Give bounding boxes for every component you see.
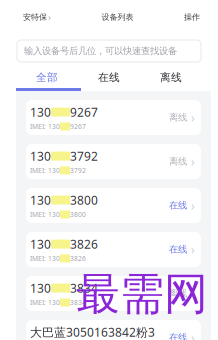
staticText: › — [191, 153, 195, 169]
button[interactable]: 130 — [26, 188, 201, 223]
staticText: 130 — [30, 192, 51, 208]
staticText: › — [191, 197, 195, 213]
staticText: 130 — [30, 236, 51, 252]
staticText: › — [191, 329, 195, 340]
staticText: 在线 — [169, 244, 187, 255]
staticText: 在线 — [98, 71, 120, 84]
staticText: 130 — [30, 148, 51, 164]
staticText: › — [191, 285, 195, 301]
button[interactable]: 离线 — [140, 67, 202, 88]
staticText: 在线 — [169, 332, 187, 340]
staticText: IMEI: 130 — [30, 122, 60, 131]
staticText: IMEI: 130 — [30, 254, 60, 263]
staticText: IMEI: 130 — [30, 210, 60, 219]
staticText: 全部 — [36, 71, 58, 84]
button[interactable]: 130 — [26, 144, 201, 179]
staticText: › — [191, 109, 195, 125]
staticText: IMEI: 130 — [30, 298, 60, 307]
button[interactable]: 全部 — [16, 67, 78, 88]
staticText: › — [48, 11, 51, 23]
button[interactable]: 输入设备号后几位，可以快速查找设备 — [0, 30, 218, 62]
staticText: 设备列表 — [101, 12, 133, 22]
staticText: 离线 — [160, 71, 182, 84]
button[interactable]: 在线 — [78, 67, 140, 88]
staticText: 操作 — [184, 12, 200, 22]
button[interactable]: 130 — [26, 100, 201, 135]
staticText: 130 — [30, 280, 51, 296]
staticText: 安特保 — [23, 12, 47, 22]
staticText: 3834 — [70, 298, 86, 307]
staticText: 3834 — [70, 280, 98, 296]
button[interactable]: 130 — [26, 232, 201, 267]
button[interactable]: 大巴蓝3050163842粉3 — [26, 320, 201, 340]
staticText: 3826 — [70, 254, 86, 263]
staticText: 3826 — [70, 236, 98, 252]
button[interactable]: 操作 — [184, 8, 218, 26]
staticText: 最需网 — [76, 267, 208, 321]
staticText: 3792 — [70, 148, 98, 164]
staticText: 离线 — [169, 112, 187, 123]
staticText: 9267 — [70, 122, 86, 131]
staticText: 大巴蓝3050163842粉3 — [30, 324, 155, 340]
staticText: 在线 — [169, 200, 187, 211]
staticText: 离线 — [169, 156, 187, 167]
staticText: 离线 — [169, 288, 187, 299]
staticText: 9267 — [70, 104, 98, 120]
staticText: 130 — [30, 104, 51, 120]
button[interactable]: 130 — [26, 276, 201, 311]
staticText: IMEI: 130 — [30, 166, 60, 175]
staticText: › — [191, 241, 195, 257]
staticText: 3800 — [70, 192, 98, 208]
staticText: 3792 — [70, 166, 86, 175]
button[interactable]: 安特保 — [0, 7, 51, 27]
staticText: 3800 — [70, 210, 86, 219]
staticText: 输入设备号后几位，可以快速查找设备 — [24, 45, 177, 57]
